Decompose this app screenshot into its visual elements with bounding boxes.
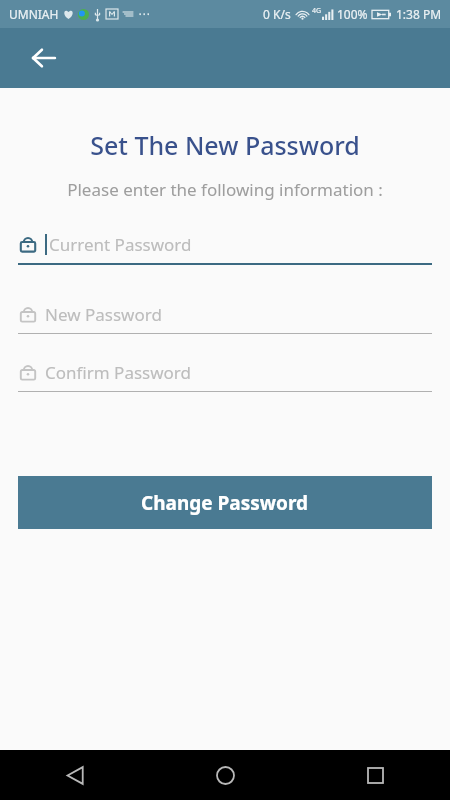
staticText: 4G <box>312 6 322 16</box>
staticText: 1:38 PM <box>396 6 442 22</box>
staticText: Current Password <box>49 233 192 256</box>
button[interactable]: New Password <box>18 297 432 334</box>
staticText: Change Password <box>141 490 309 516</box>
staticText: 100% <box>337 6 368 22</box>
button[interactable]: Home <box>150 750 300 800</box>
button[interactable]: Current Password <box>18 227 432 265</box>
staticText: 0 K/s <box>263 6 291 22</box>
staticText: UMNIAH <box>9 6 59 22</box>
staticText: ⋯ <box>138 7 150 21</box>
staticText: Set The New Password <box>0 128 450 162</box>
button[interactable]: Back <box>0 750 150 800</box>
staticText: New Password <box>45 303 162 326</box>
button[interactable]: Confirm Password <box>18 355 432 392</box>
button[interactable]: Change Password <box>18 476 432 529</box>
staticText: Confirm Password <box>45 361 191 384</box>
button[interactable]: Back <box>20 34 68 82</box>
button[interactable]: Recents <box>300 750 450 800</box>
staticText: Please enter the following information : <box>0 178 450 201</box>
